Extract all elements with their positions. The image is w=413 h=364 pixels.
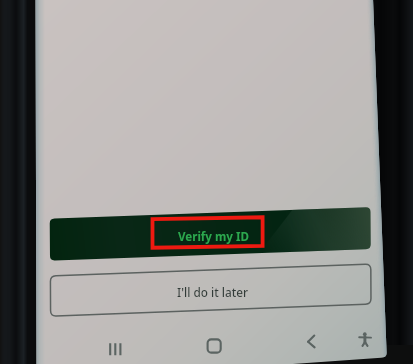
staticText: Verify my ID [178, 229, 249, 245]
button[interactable]: I'll do it later [50, 265, 372, 309]
staticText: I'll do it later [177, 284, 248, 300]
button[interactable]: Verify my ID [49, 209, 371, 260]
